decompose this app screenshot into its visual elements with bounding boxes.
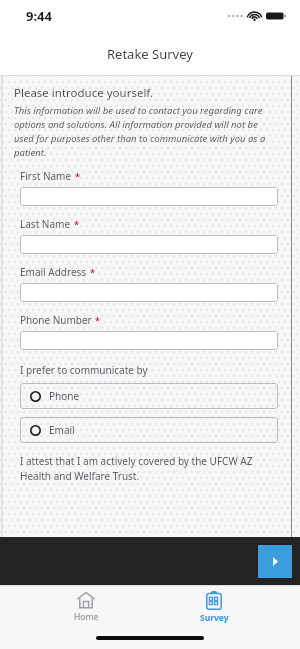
staticText: Please introduce yourself. [14,85,154,101]
button[interactable]: Phone [20,383,278,409]
staticText: Retake Survey [107,45,193,63]
button[interactable] [20,235,278,254]
staticText: First Name [20,169,72,183]
staticText: * [90,266,95,278]
staticText: * [95,314,100,326]
staticText: Last Name [20,217,71,231]
staticText: I prefer to communicate by [20,363,148,377]
staticText: I attest that I am actively covered by t… [20,454,253,483]
button[interactable]: Home [44,589,128,625]
staticText: Home [74,611,99,623]
button[interactable] [20,187,278,206]
staticText: Phone Number [20,313,92,327]
button[interactable] [20,331,278,350]
staticText: * [74,218,79,230]
staticText: * [75,170,80,182]
button[interactable]: Next [258,545,292,578]
button[interactable]: Survey [172,589,256,626]
staticText: Email Address [20,265,87,279]
staticText: Phone [49,389,80,403]
staticText: 9:44 [26,7,52,25]
button[interactable] [20,283,278,302]
button[interactable]: Email [20,417,278,443]
staticText: Survey [200,612,229,624]
staticText: This information will be used to contact… [14,104,278,159]
staticText: Email [49,423,75,437]
